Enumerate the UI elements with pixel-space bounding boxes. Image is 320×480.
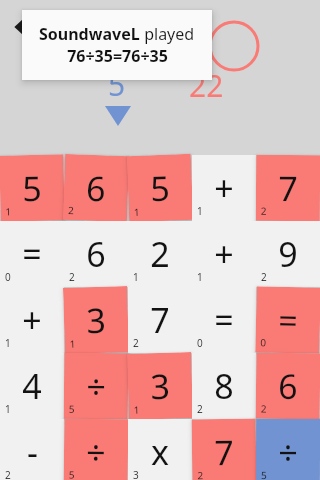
staticText: 3 <box>133 468 139 480</box>
staticText: 5 <box>108 64 126 105</box>
staticText: ÷ <box>278 429 298 475</box>
staticText: 2 <box>5 468 11 480</box>
button[interactable]: 7 <box>128 287 192 353</box>
button[interactable]: + <box>0 287 64 353</box>
button[interactable]: Back <box>12 18 28 36</box>
staticText: 2 <box>261 402 267 416</box>
staticText: 2 <box>261 270 267 284</box>
button[interactable]: 8 <box>192 353 256 419</box>
staticText: + <box>214 231 234 277</box>
staticText: 6 <box>86 231 106 277</box>
button[interactable]: + <box>192 155 256 221</box>
staticText: 1 <box>133 403 140 417</box>
button[interactable]: 6 <box>255 353 320 419</box>
staticText: 22 <box>189 65 224 106</box>
staticText: 2 <box>69 270 75 284</box>
staticText: 7 <box>150 297 170 343</box>
staticText: 3 <box>149 363 171 409</box>
button[interactable]: ÷ <box>256 419 320 480</box>
staticText: 2 <box>197 468 203 480</box>
staticText: 5 <box>69 402 75 416</box>
staticText: - <box>27 429 38 475</box>
staticText: 6 <box>85 165 107 211</box>
staticText: 7 <box>278 165 298 211</box>
button[interactable]: 6 <box>63 154 129 222</box>
button[interactable]: 5 <box>0 154 65 222</box>
button[interactable]: 4 <box>0 353 64 419</box>
staticText: 7 <box>214 429 234 475</box>
staticText: 1 <box>5 402 11 416</box>
button[interactable]: 3 <box>63 286 129 354</box>
button[interactable]: 3 <box>127 352 193 420</box>
button[interactable]: SoundwaveL <box>22 10 212 80</box>
staticText: 2 <box>261 204 267 218</box>
staticText: 1 <box>5 204 12 218</box>
staticText: 5 <box>149 165 171 211</box>
button[interactable]: = <box>0 221 64 287</box>
button[interactable]: 7 <box>191 419 256 480</box>
staticText: 8 <box>214 363 234 409</box>
staticText: 1 <box>197 270 203 284</box>
staticText: 1 <box>5 336 11 350</box>
button[interactable]: 7 <box>256 155 320 221</box>
button[interactable]: - <box>0 419 64 480</box>
button[interactable]: = <box>255 286 320 354</box>
staticText: 0 <box>5 270 11 284</box>
staticText: 1 <box>197 204 203 218</box>
staticText: 2 <box>133 336 139 350</box>
staticText: 0 <box>197 336 203 350</box>
staticText: x <box>151 429 169 475</box>
staticText: ÷ <box>86 429 106 475</box>
staticText: 2 <box>197 402 203 416</box>
staticText: 76÷35=76÷35 <box>67 45 168 67</box>
staticText: 3 <box>85 297 107 343</box>
staticText: ÷ <box>86 363 106 409</box>
staticText: = <box>22 231 42 277</box>
staticText: 9 <box>278 231 298 277</box>
staticText: 2 <box>150 231 170 277</box>
button[interactable]: 5 <box>127 154 193 222</box>
button[interactable]: + <box>192 221 256 287</box>
staticText: = <box>277 297 298 343</box>
staticText: played <box>140 23 195 45</box>
staticText: 5 <box>261 468 267 480</box>
button[interactable]: 2 <box>128 221 192 287</box>
button[interactable]: x <box>128 419 192 480</box>
button[interactable]: 9 <box>256 221 320 287</box>
staticText: 0 <box>260 335 267 349</box>
staticText: SoundwaveL <box>39 23 140 45</box>
staticText: 2 <box>68 203 74 217</box>
button[interactable]: ÷ <box>63 419 128 480</box>
staticText: + <box>22 297 42 343</box>
button[interactable]: = <box>192 287 256 353</box>
button[interactable]: 6 <box>64 221 128 287</box>
button[interactable]: ÷ <box>64 353 128 419</box>
staticText: 1 <box>133 270 139 284</box>
staticText: 5 <box>69 468 75 480</box>
staticText: 4 <box>22 363 42 409</box>
staticText: 1 <box>134 205 140 219</box>
staticText: = <box>214 297 234 343</box>
staticText: 6 <box>278 363 298 409</box>
staticText: 1 <box>69 337 76 351</box>
staticText: + <box>214 165 234 211</box>
staticText: 5 <box>21 165 42 211</box>
